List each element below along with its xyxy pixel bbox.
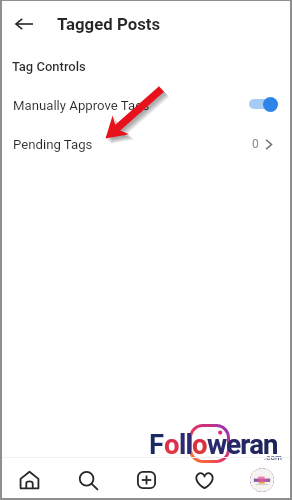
staticText: o xyxy=(164,428,179,460)
staticText: .com xyxy=(264,453,282,462)
staticText: Pending Tags xyxy=(13,137,93,152)
staticText: o xyxy=(192,428,207,460)
button[interactable]: Back xyxy=(10,10,38,38)
staticText: weran xyxy=(207,428,278,460)
button[interactable]: Manually Approve Tags xyxy=(2,89,290,121)
staticText: Tag Controls xyxy=(12,59,86,74)
staticText: Tagged Posts xyxy=(57,14,161,34)
staticText: 0 xyxy=(252,137,259,151)
button[interactable]: Activity xyxy=(185,466,224,495)
staticText: ll xyxy=(179,428,192,460)
staticText: F xyxy=(149,428,164,460)
staticText: Manually Approve Tags xyxy=(13,98,150,113)
button[interactable]: Manually approve tags toggle xyxy=(249,96,281,114)
button[interactable]: Create xyxy=(127,465,166,495)
button[interactable]: Profile xyxy=(246,464,278,496)
button[interactable]: Home xyxy=(10,465,49,495)
button[interactable]: Pending Tags xyxy=(2,128,290,160)
button[interactable]: Search xyxy=(69,465,108,496)
